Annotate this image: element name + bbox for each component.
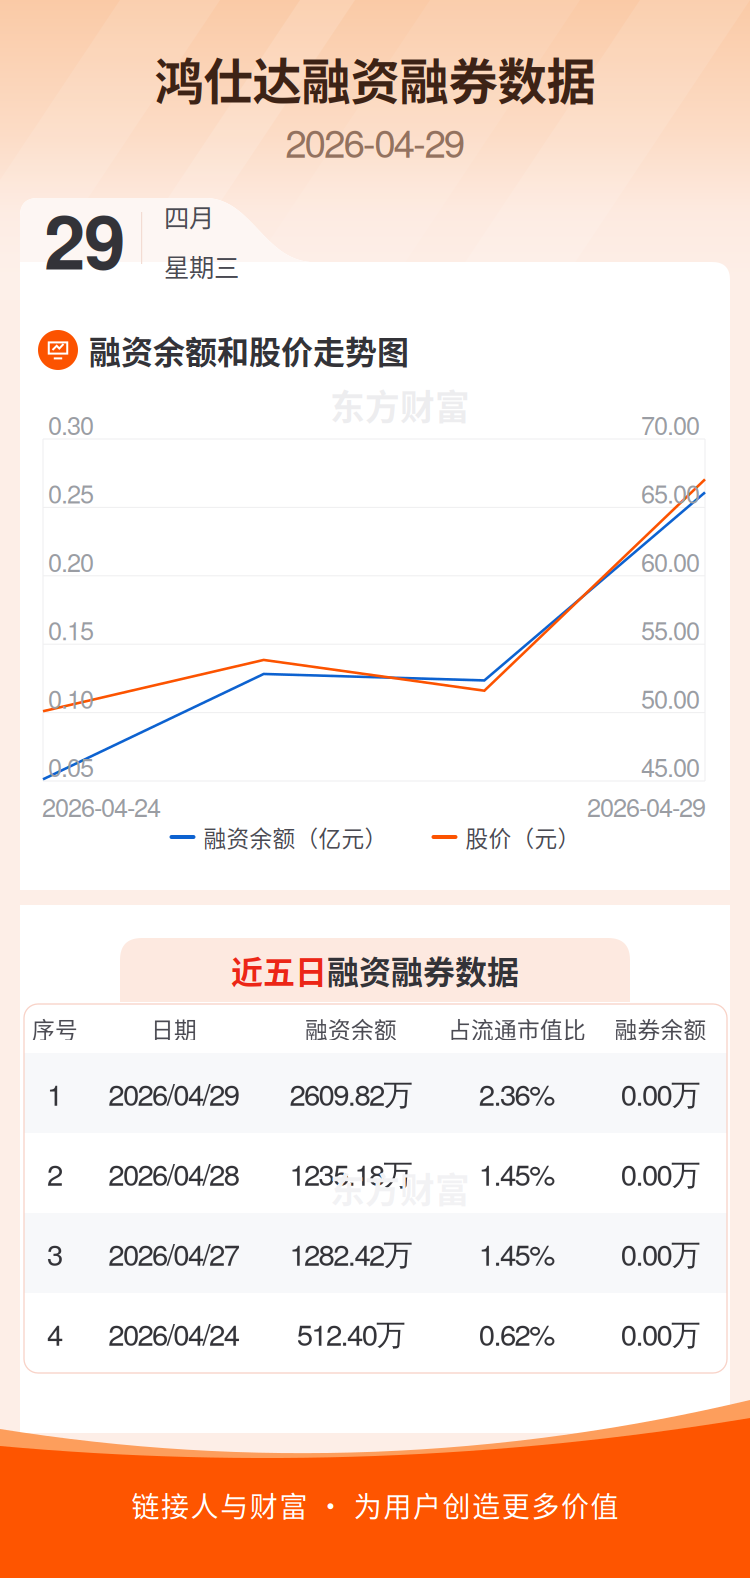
staticText: 65.00 — [641, 474, 700, 511]
button[interactable]: 2 — [24, 1133, 727, 1213]
staticText: 东方财富 — [330, 380, 470, 430]
staticText: 融券余额 — [614, 1012, 706, 1045]
staticText: 29 — [44, 185, 126, 292]
staticText: 2026-04-29 — [285, 113, 465, 169]
staticText: 0.00万 — [621, 1312, 700, 1354]
staticText: 0.00万 — [621, 1232, 700, 1274]
staticText: 四月 — [164, 198, 214, 234]
staticText: 0.05 — [48, 748, 94, 784]
staticText: 1.45% — [479, 1232, 555, 1274]
staticText: 2026/04/27 — [108, 1232, 240, 1274]
staticText: 近五日 — [231, 947, 327, 993]
staticText: 0.20 — [48, 543, 94, 579]
staticText: 东方财富 — [330, 1163, 470, 1213]
button[interactable]: 1 — [24, 1053, 727, 1133]
staticText: 70.00 — [641, 406, 700, 442]
staticText: 股价（元） — [465, 821, 580, 853]
button[interactable]: 序号 — [24, 1004, 727, 1053]
staticText: 2.36% — [479, 1072, 555, 1114]
staticText: 0.15 — [48, 611, 94, 647]
staticText: 2026/04/29 — [108, 1072, 240, 1114]
staticText: 序号 — [32, 1012, 78, 1045]
staticText: 2026/04/28 — [108, 1152, 240, 1194]
button[interactable]: 4 — [24, 1293, 727, 1373]
staticText: 50.00 — [641, 680, 700, 716]
staticText: 1 — [47, 1072, 63, 1114]
staticText: 2026-04-24 — [42, 788, 161, 824]
staticText: 1235.18万 — [289, 1152, 413, 1194]
staticText: 0.25 — [48, 474, 94, 511]
staticText: 45.00 — [641, 748, 700, 784]
staticText: 55.00 — [641, 611, 700, 647]
staticText: 鸿仕达融资融券数据 — [154, 42, 595, 114]
staticText: 2026/04/24 — [108, 1312, 240, 1354]
button[interactable]: 3 — [24, 1213, 727, 1293]
staticText: 0.62% — [479, 1312, 555, 1354]
staticText: 占流通市值比 — [448, 1012, 586, 1045]
staticText: 0.00万 — [621, 1072, 700, 1114]
staticText: 3 — [47, 1232, 63, 1274]
staticText: 融资余额（亿元） — [203, 821, 387, 853]
staticText: 2 — [47, 1152, 63, 1194]
staticText: 星期三 — [164, 247, 239, 284]
staticText: 1282.42万 — [289, 1232, 413, 1274]
staticText: 0.30 — [48, 406, 94, 442]
staticText: 512.40万 — [297, 1312, 405, 1354]
staticText: 日期 — [151, 1012, 197, 1045]
staticText: 融资融券数据 — [327, 947, 519, 993]
staticText: 0.10 — [48, 680, 94, 716]
staticText: 4 — [47, 1312, 63, 1354]
staticText: 0.00万 — [621, 1152, 700, 1194]
staticText: 1.45% — [479, 1152, 555, 1194]
staticText: 链接人与财富 · 为用户创造更多价值 — [131, 1485, 619, 1525]
staticText: 60.00 — [641, 543, 700, 579]
staticText: 2609.82万 — [289, 1072, 413, 1114]
staticText: 2026-04-29 — [587, 788, 706, 824]
staticText: 融资余额和股价走势图 — [89, 327, 409, 373]
staticText: 融资余额 — [305, 1012, 397, 1045]
